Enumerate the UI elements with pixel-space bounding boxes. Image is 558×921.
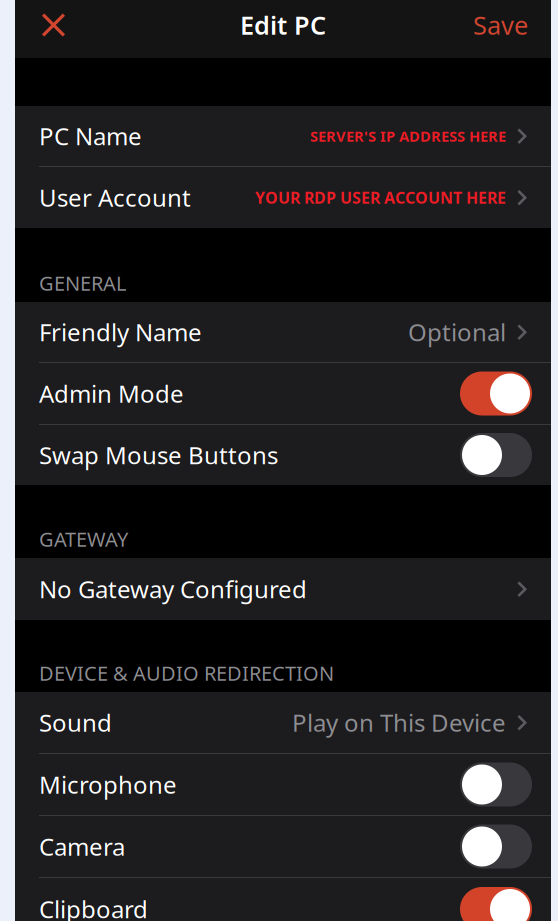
staticText: Admin Mode <box>39 378 184 409</box>
staticText: Clipboard <box>39 893 148 921</box>
staticText: No Gateway Configured <box>39 573 307 605</box>
button[interactable]: Clipboard <box>15 878 551 921</box>
staticText: Save <box>473 8 528 42</box>
staticText: YOUR RDP USER ACCOUNT HERE <box>255 187 506 208</box>
button[interactable]: No Gateway Configured <box>15 558 551 620</box>
staticText: Friendly Name <box>39 316 202 348</box>
staticText: Optional <box>408 316 506 348</box>
staticText: Swap Mouse Buttons <box>39 439 278 471</box>
button[interactable]: Save <box>457 0 551 50</box>
staticText: GATEWAY <box>39 526 128 552</box>
staticText: Edit PC <box>240 8 326 42</box>
staticText: User Account <box>39 182 191 213</box>
button[interactable]: Friendly Name <box>15 302 551 362</box>
button[interactable]: Admin Mode <box>15 363 551 424</box>
staticText: DEVICE & AUDIO REDIRECTION <box>39 660 334 686</box>
button[interactable]: Sound <box>15 692 551 753</box>
staticText: Sound <box>39 707 112 738</box>
staticText: Play on This Device <box>292 707 506 738</box>
staticText: Camera <box>39 831 125 862</box>
staticText: GENERAL <box>39 270 126 296</box>
button[interactable]: Microphone <box>15 754 551 815</box>
button[interactable]: Swap Mouse Buttons <box>15 425 551 485</box>
button[interactable]: Close <box>15 0 82 50</box>
staticText: SERVER'S IP ADDRESS HERE <box>310 126 506 146</box>
button[interactable]: PC Name <box>15 106 551 166</box>
button[interactable]: User Account <box>15 167 551 228</box>
staticText: Microphone <box>39 769 177 800</box>
staticText: PC Name <box>39 120 142 152</box>
button[interactable]: Camera <box>15 816 551 877</box>
